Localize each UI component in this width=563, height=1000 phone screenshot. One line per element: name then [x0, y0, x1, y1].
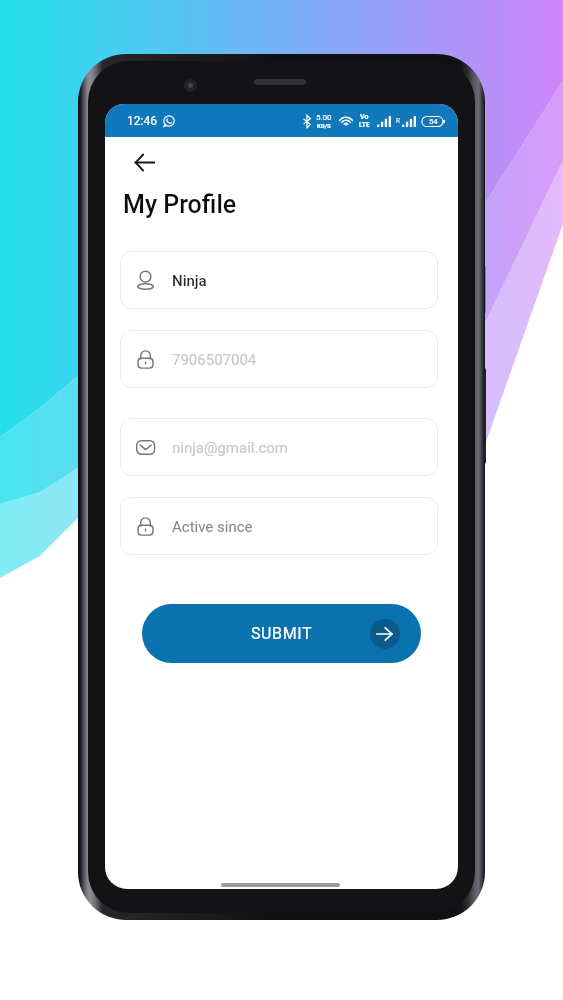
staticText: LTE	[359, 121, 370, 129]
staticText: KB/S	[317, 122, 331, 129]
staticText: 7906507004	[172, 351, 257, 369]
button[interactable]: 7906507004	[120, 330, 438, 388]
staticText: My Profile	[123, 190, 237, 219]
staticText: Active since	[172, 518, 253, 536]
staticText: Ninja	[172, 272, 207, 290]
button[interactable]: SUBMIT	[142, 604, 421, 663]
button[interactable]: Active since	[120, 497, 438, 555]
button[interactable]: ninja@gmail.com	[120, 418, 438, 476]
staticText: ninja@gmail.com	[172, 439, 288, 457]
button[interactable]: Back	[122, 140, 166, 184]
staticText: 12:46	[127, 114, 157, 128]
staticText: 54	[429, 117, 438, 126]
button[interactable]: Ninja	[120, 251, 438, 309]
staticText: SUBMIT	[251, 624, 313, 643]
staticText: R	[396, 117, 401, 125]
staticText: 5.00	[316, 113, 332, 122]
staticText: Vo	[360, 113, 369, 121]
